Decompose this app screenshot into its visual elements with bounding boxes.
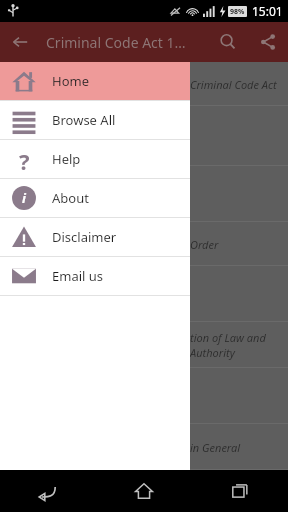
button[interactable]: Recents: [192, 470, 288, 512]
staticText: tion of Law and: [190, 330, 266, 345]
button[interactable]: Search: [208, 22, 248, 62]
staticText: Email us: [52, 267, 104, 285]
staticText: 98%: [230, 7, 245, 17]
button[interactable]: Home: [96, 470, 192, 512]
button[interactable]: Share: [248, 22, 288, 62]
staticText: i: [22, 189, 26, 207]
staticText: About: [52, 189, 89, 207]
staticText: ?: [19, 146, 30, 172]
button[interactable]: Back: [0, 22, 40, 62]
staticText: Disclaimer: [52, 228, 117, 246]
staticText: Order: [190, 237, 219, 252]
button[interactable]: ?: [0, 140, 190, 178]
button[interactable]: Disclaimer: [0, 218, 190, 256]
staticText: Criminal Code Act: [190, 77, 277, 92]
button[interactable]: i: [0, 179, 190, 217]
button[interactable]: Browse All: [0, 101, 190, 139]
staticText: 15:01: [252, 3, 283, 19]
button[interactable]: Home: [0, 62, 190, 100]
staticText: Criminal Code Act 1…: [46, 33, 208, 52]
button[interactable]: Email us: [0, 257, 190, 295]
button[interactable]: Back: [0, 470, 96, 512]
staticText: Home: [52, 72, 89, 90]
staticText: in General: [190, 440, 241, 455]
staticText: Help: [52, 150, 81, 168]
staticText: Browse All: [52, 111, 116, 129]
staticText: Authority: [190, 345, 235, 360]
